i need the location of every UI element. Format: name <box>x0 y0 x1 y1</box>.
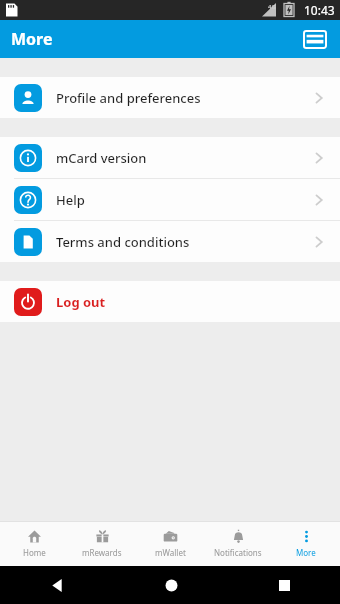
staticText: 10:43 <box>304 2 335 18</box>
staticText: Help <box>56 191 85 209</box>
staticText: mWallet <box>155 547 186 558</box>
staticText: Log out <box>56 293 106 311</box>
button[interactable]: mRewards <box>68 522 136 566</box>
button[interactable]: My card <box>298 22 332 56</box>
button[interactable]: Profile and preferences <box>0 77 340 118</box>
button[interactable]: Notifications <box>204 522 272 566</box>
button[interactable]: Log out <box>0 281 340 322</box>
staticText: mRewards <box>82 547 122 558</box>
staticText: More <box>11 28 53 50</box>
button[interactable]: Help <box>0 179 340 220</box>
staticText: 4G <box>268 3 276 11</box>
staticText: Terms and conditions <box>56 233 190 251</box>
button[interactable]: Home <box>0 522 68 566</box>
button[interactable]: Home <box>154 568 188 602</box>
staticText: Notifications <box>214 547 262 558</box>
staticText: mCard version <box>56 149 147 167</box>
button[interactable]: mCard version <box>0 137 340 178</box>
button[interactable]: Terms and conditions <box>0 221 340 262</box>
staticText: Profile and preferences <box>56 89 201 107</box>
staticText: More <box>296 547 316 558</box>
button[interactable]: mWallet <box>136 522 204 566</box>
button[interactable]: Back <box>40 568 74 602</box>
staticText: Home <box>23 547 46 558</box>
button[interactable]: More <box>272 522 340 566</box>
button[interactable]: Recent apps <box>267 568 301 602</box>
